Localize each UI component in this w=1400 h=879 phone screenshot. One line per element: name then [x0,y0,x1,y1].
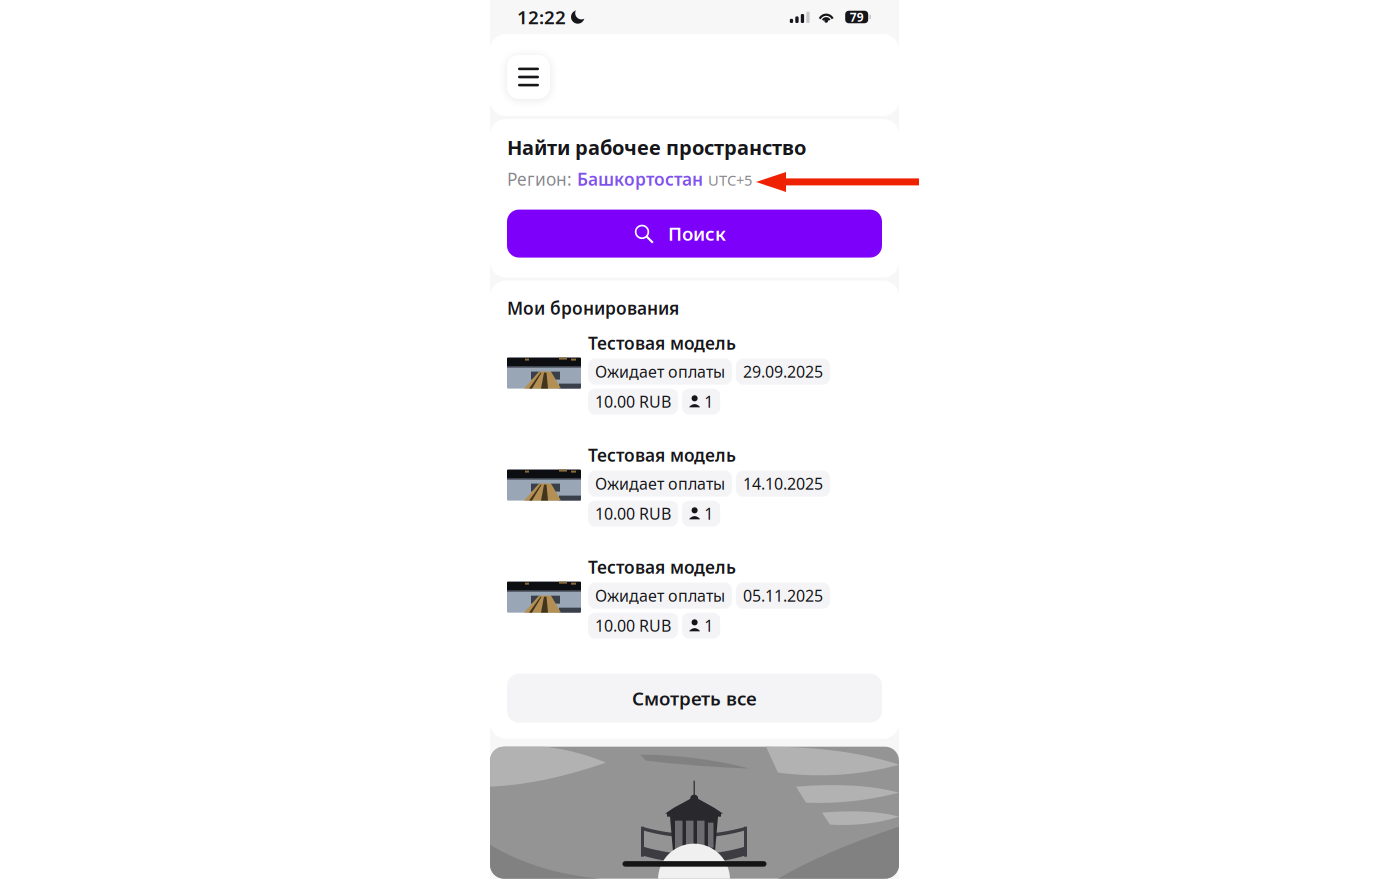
staticText: Тестовая модель [588,332,736,355]
staticText: 05.11.2025 [743,585,823,606]
staticText: 1 [704,615,713,636]
staticText: 12:22 [517,5,566,29]
staticText: Найти рабочее пространство [507,134,806,161]
staticText: Ожидает оплаты [595,473,725,494]
staticText: 10.00 RUB [595,503,671,524]
button[interactable]: Тестовая модель [507,332,882,415]
staticText: Башкортостан [577,168,703,191]
staticText: 79 [850,9,864,25]
staticText: 29.09.2025 [743,361,823,382]
staticText: Тестовая модель [588,556,736,579]
staticText: Ожидает оплаты [595,585,725,606]
button[interactable]: Смотреть все [507,674,882,723]
staticText: Поиск [668,221,726,246]
staticText: UTC+5 [708,170,752,190]
staticText: 10.00 RUB [595,391,671,412]
staticText: 14.10.2025 [743,473,823,494]
button[interactable]: Тестовая модель [507,556,882,639]
staticText: 1 [704,391,713,412]
staticText: 10.00 RUB [595,615,671,636]
button[interactable]: Поиск [507,210,882,258]
staticText: Регион: [507,168,572,191]
staticText: 1 [704,503,713,524]
button[interactable]: Menu [507,55,550,99]
staticText: Ожидает оплаты [595,361,725,382]
staticText: Мои бронирования [507,297,679,320]
button[interactable]: Промо [490,747,899,879]
staticText: Смотреть все [632,686,757,711]
staticText: Тестовая модель [588,444,736,467]
button[interactable]: Тестовая модель [507,444,882,527]
